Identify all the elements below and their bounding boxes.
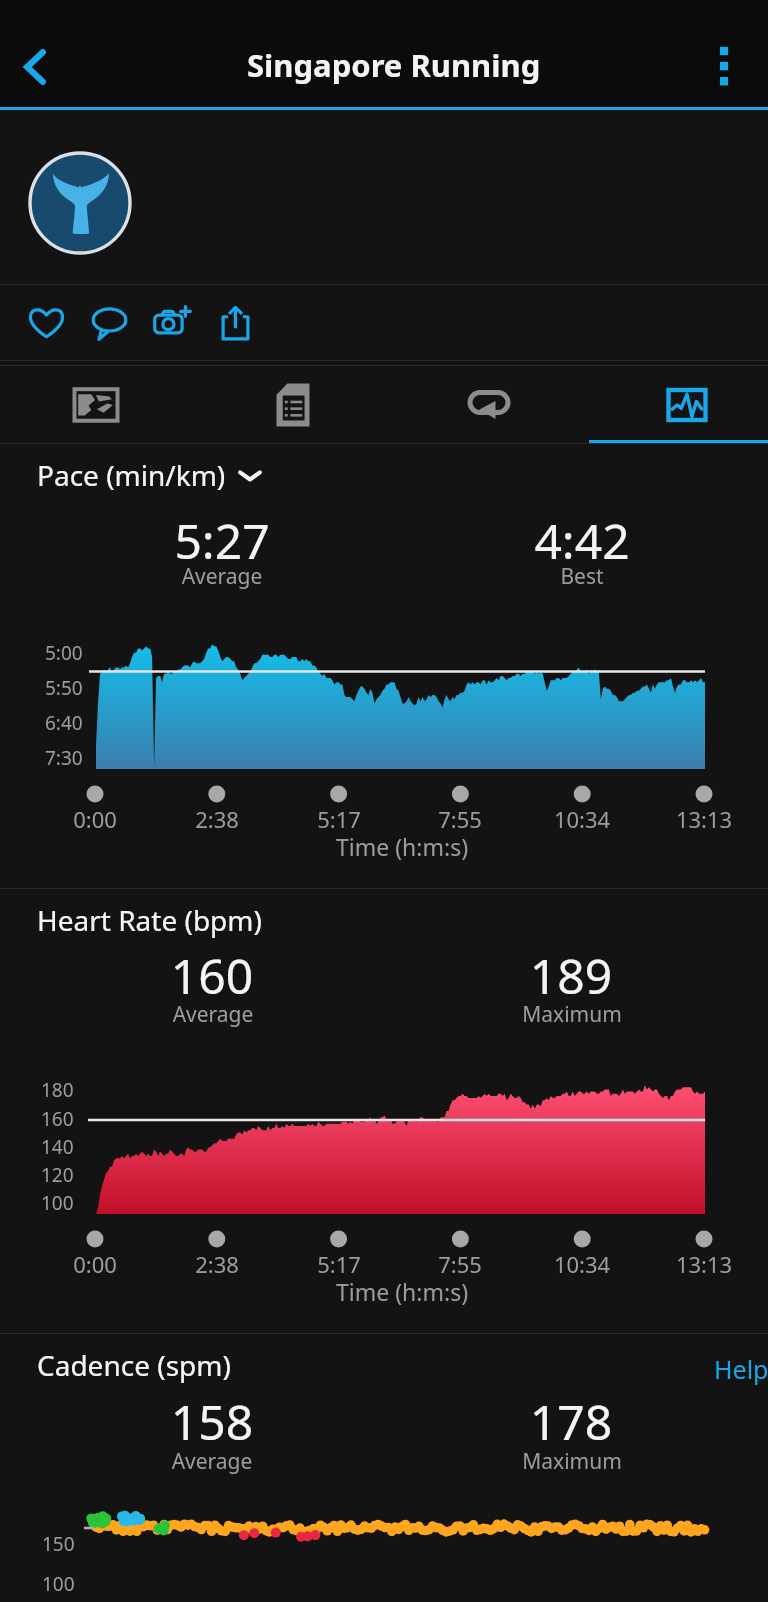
staticText: Cadence (spm) <box>37 1346 231 1384</box>
staticText: 5:00 <box>45 640 83 666</box>
staticText: 120 <box>41 1162 74 1188</box>
staticText: Average <box>33 1000 393 1029</box>
staticText: 100 <box>41 1190 74 1216</box>
staticText: 178 <box>391 1389 751 1454</box>
button[interactable]: Pace (min/km) <box>37 456 263 494</box>
staticText: 7:55 <box>390 1249 530 1279</box>
button[interactable]: Share <box>204 291 267 354</box>
staticText: 0:00 <box>25 804 165 834</box>
staticText: Heart Rate (bpm) <box>37 901 262 939</box>
button[interactable]: Back <box>0 23 72 105</box>
staticText: Average <box>42 562 402 591</box>
staticText: 5:50 <box>45 675 83 701</box>
staticText: 5:17 <box>269 804 409 834</box>
staticText: 0:00 <box>25 1249 165 1279</box>
staticText: Pace (min/km) <box>37 456 226 494</box>
staticText: Best <box>402 562 762 591</box>
staticText: Time (h:m:s) <box>336 1276 469 1307</box>
button[interactable]: Details <box>197 366 389 443</box>
button[interactable]: Cadence (spm) <box>37 1346 231 1384</box>
staticText: Average <box>32 1447 392 1476</box>
staticText: 160 <box>32 943 392 1008</box>
staticText: 4:42 <box>402 508 762 573</box>
button[interactable]: Laps <box>393 366 585 443</box>
staticText: 7:55 <box>390 804 530 834</box>
button[interactable]: Comment <box>78 291 141 354</box>
staticText: 5:27 <box>42 508 402 573</box>
button[interactable]: Profile picture <box>28 151 132 255</box>
staticText: 7:30 <box>45 745 83 771</box>
staticText: Maximum <box>392 1447 752 1476</box>
staticText: Maximum <box>392 1000 752 1029</box>
staticText: 6:40 <box>45 710 83 736</box>
button[interactable]: More options <box>690 23 768 105</box>
staticText: 189 <box>391 943 751 1008</box>
staticText: 2:38 <box>147 804 287 834</box>
staticText: 13:13 <box>634 1249 768 1279</box>
button[interactable]: Like <box>15 291 78 354</box>
staticText: 150 <box>42 1531 75 1557</box>
staticText: Time (h:m:s) <box>336 831 469 862</box>
button[interactable]: Charts <box>597 366 768 443</box>
staticText: Singapore Running <box>247 44 541 86</box>
staticText: 5:17 <box>269 1249 409 1279</box>
staticText: 160 <box>41 1106 74 1132</box>
button[interactable]: Add photo <box>141 291 204 354</box>
staticText: 158 <box>32 1389 392 1454</box>
button[interactable]: Help <box>714 1352 768 1386</box>
staticText: 13:13 <box>634 804 768 834</box>
button[interactable]: Map <box>0 366 192 443</box>
staticText: 10:34 <box>512 804 652 834</box>
staticText: 2:38 <box>147 1249 287 1279</box>
staticText: 10:34 <box>512 1249 652 1279</box>
button[interactable]: Heart Rate (bpm) <box>37 901 262 939</box>
staticText: 180 <box>41 1077 74 1103</box>
staticText: 140 <box>41 1134 74 1160</box>
staticText: 100 <box>42 1571 75 1597</box>
